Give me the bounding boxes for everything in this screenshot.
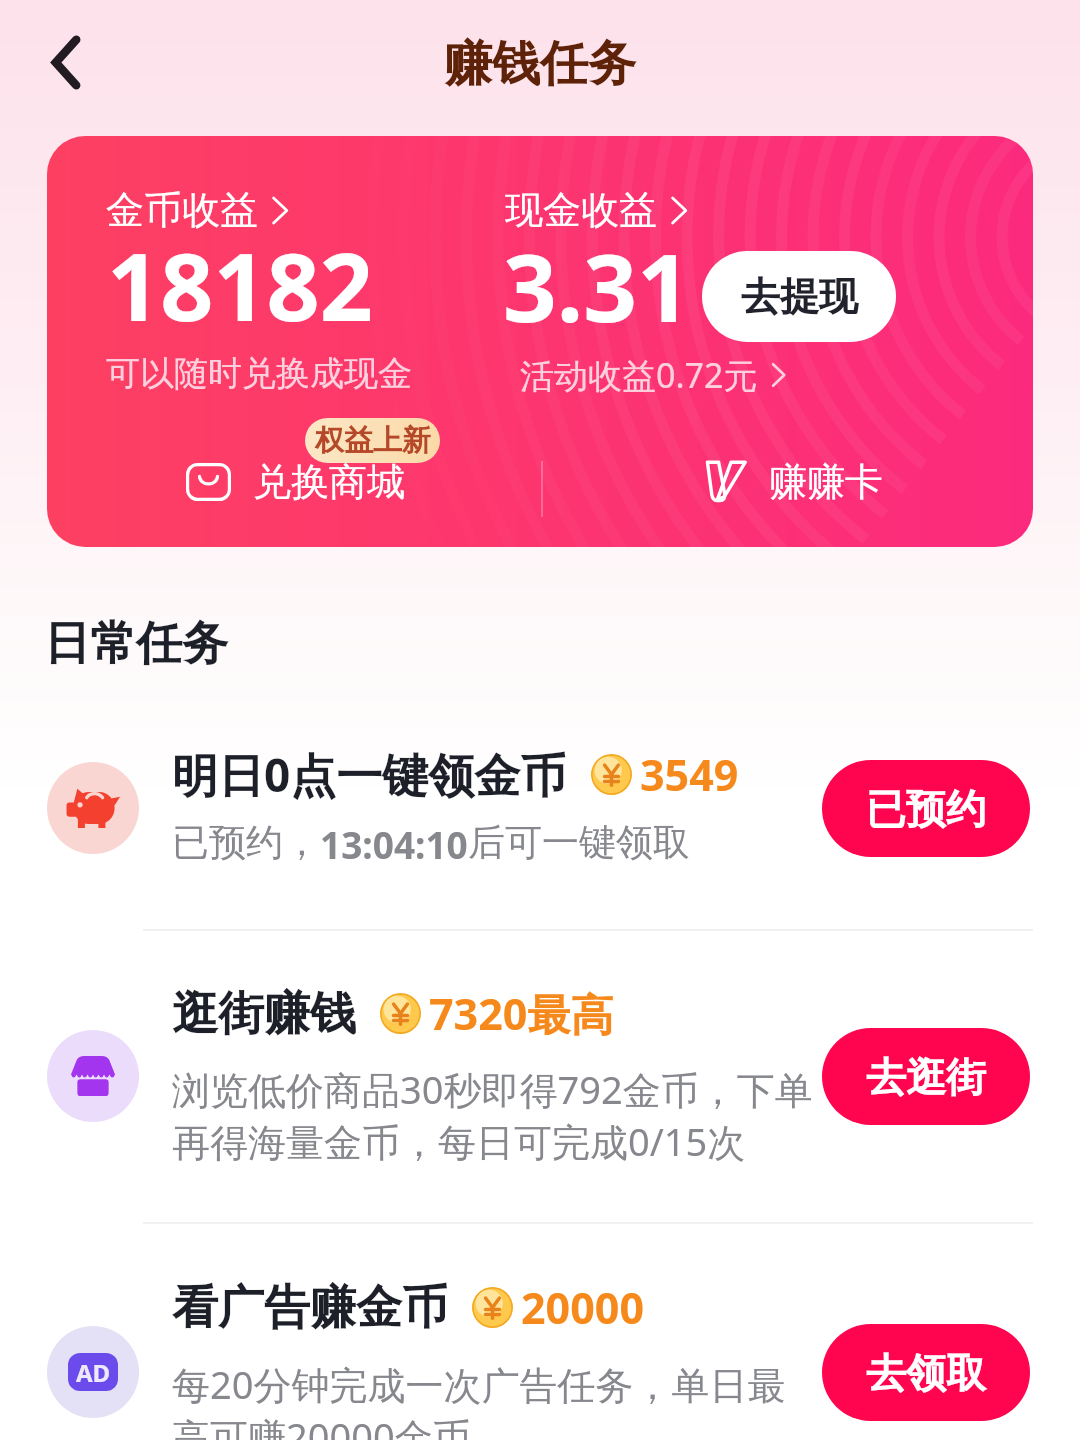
- button[interactable]: 去领取: [822, 1324, 1030, 1421]
- button[interactable]: 去逛街: [822, 1028, 1030, 1125]
- staticText: 现金收益: [505, 186, 657, 234]
- staticText: 权益上新: [315, 422, 431, 459]
- staticText: 13:04:10: [320, 819, 468, 869]
- staticText: 7320最高: [429, 984, 614, 1043]
- staticText: 浏览低价商品30秒即得792金币，下单: [172, 1063, 813, 1115]
- button[interactable]: [0, 702, 1080, 990]
- staticText: 日常任务: [44, 615, 228, 673]
- button[interactable]: 兑换商城: [186, 458, 405, 506]
- staticText: 去领取: [866, 1348, 986, 1398]
- staticText: 赚钱任务: [444, 34, 636, 94]
- staticText: 看广告赚金币: [172, 1279, 448, 1337]
- staticText: 逛街赚钱: [172, 985, 356, 1043]
- button[interactable]: 已预约: [822, 760, 1030, 857]
- staticText: 后可一键领取: [468, 819, 690, 866]
- staticText: 已预约，: [172, 819, 320, 866]
- staticText: 可以随时兑换成现金: [106, 352, 412, 395]
- staticText: 20000: [521, 1278, 644, 1337]
- staticText: 每20分钟完成一次广告任务，单日最: [172, 1358, 786, 1410]
- button[interactable]: 去提现: [702, 251, 896, 342]
- staticText: 3.31: [503, 222, 691, 350]
- staticText: 高可赚20000金币: [172, 1410, 471, 1440]
- staticText: 3549: [640, 745, 739, 804]
- staticText: 18182: [107, 222, 373, 349]
- staticText: 明日0点一键领金币: [172, 743, 567, 806]
- staticText: 去提现: [741, 272, 858, 321]
- staticText: 活动收益0.72元: [520, 352, 758, 398]
- button[interactable]: 金币收益: [47, 136, 1033, 547]
- button[interactable]: [0, 1224, 1080, 1440]
- button[interactable]: 金币收益: [106, 186, 290, 234]
- button[interactable]: 活动收益0.72元: [520, 352, 787, 398]
- button[interactable]: 赚赚卡: [704, 458, 883, 506]
- staticText: 去逛街: [866, 1052, 986, 1102]
- staticText: AD: [76, 1356, 111, 1389]
- button[interactable]: [0, 931, 1080, 1258]
- staticText: 赚赚卡: [769, 458, 883, 506]
- button[interactable]: 现金收益: [505, 186, 689, 234]
- staticText: 再得海量金币，每日可完成0/15次: [172, 1115, 746, 1167]
- staticText: 已预约: [866, 784, 986, 834]
- button[interactable]: Back: [22, 18, 110, 106]
- staticText: 兑换商城: [253, 458, 405, 506]
- staticText: 金币收益: [106, 186, 258, 234]
